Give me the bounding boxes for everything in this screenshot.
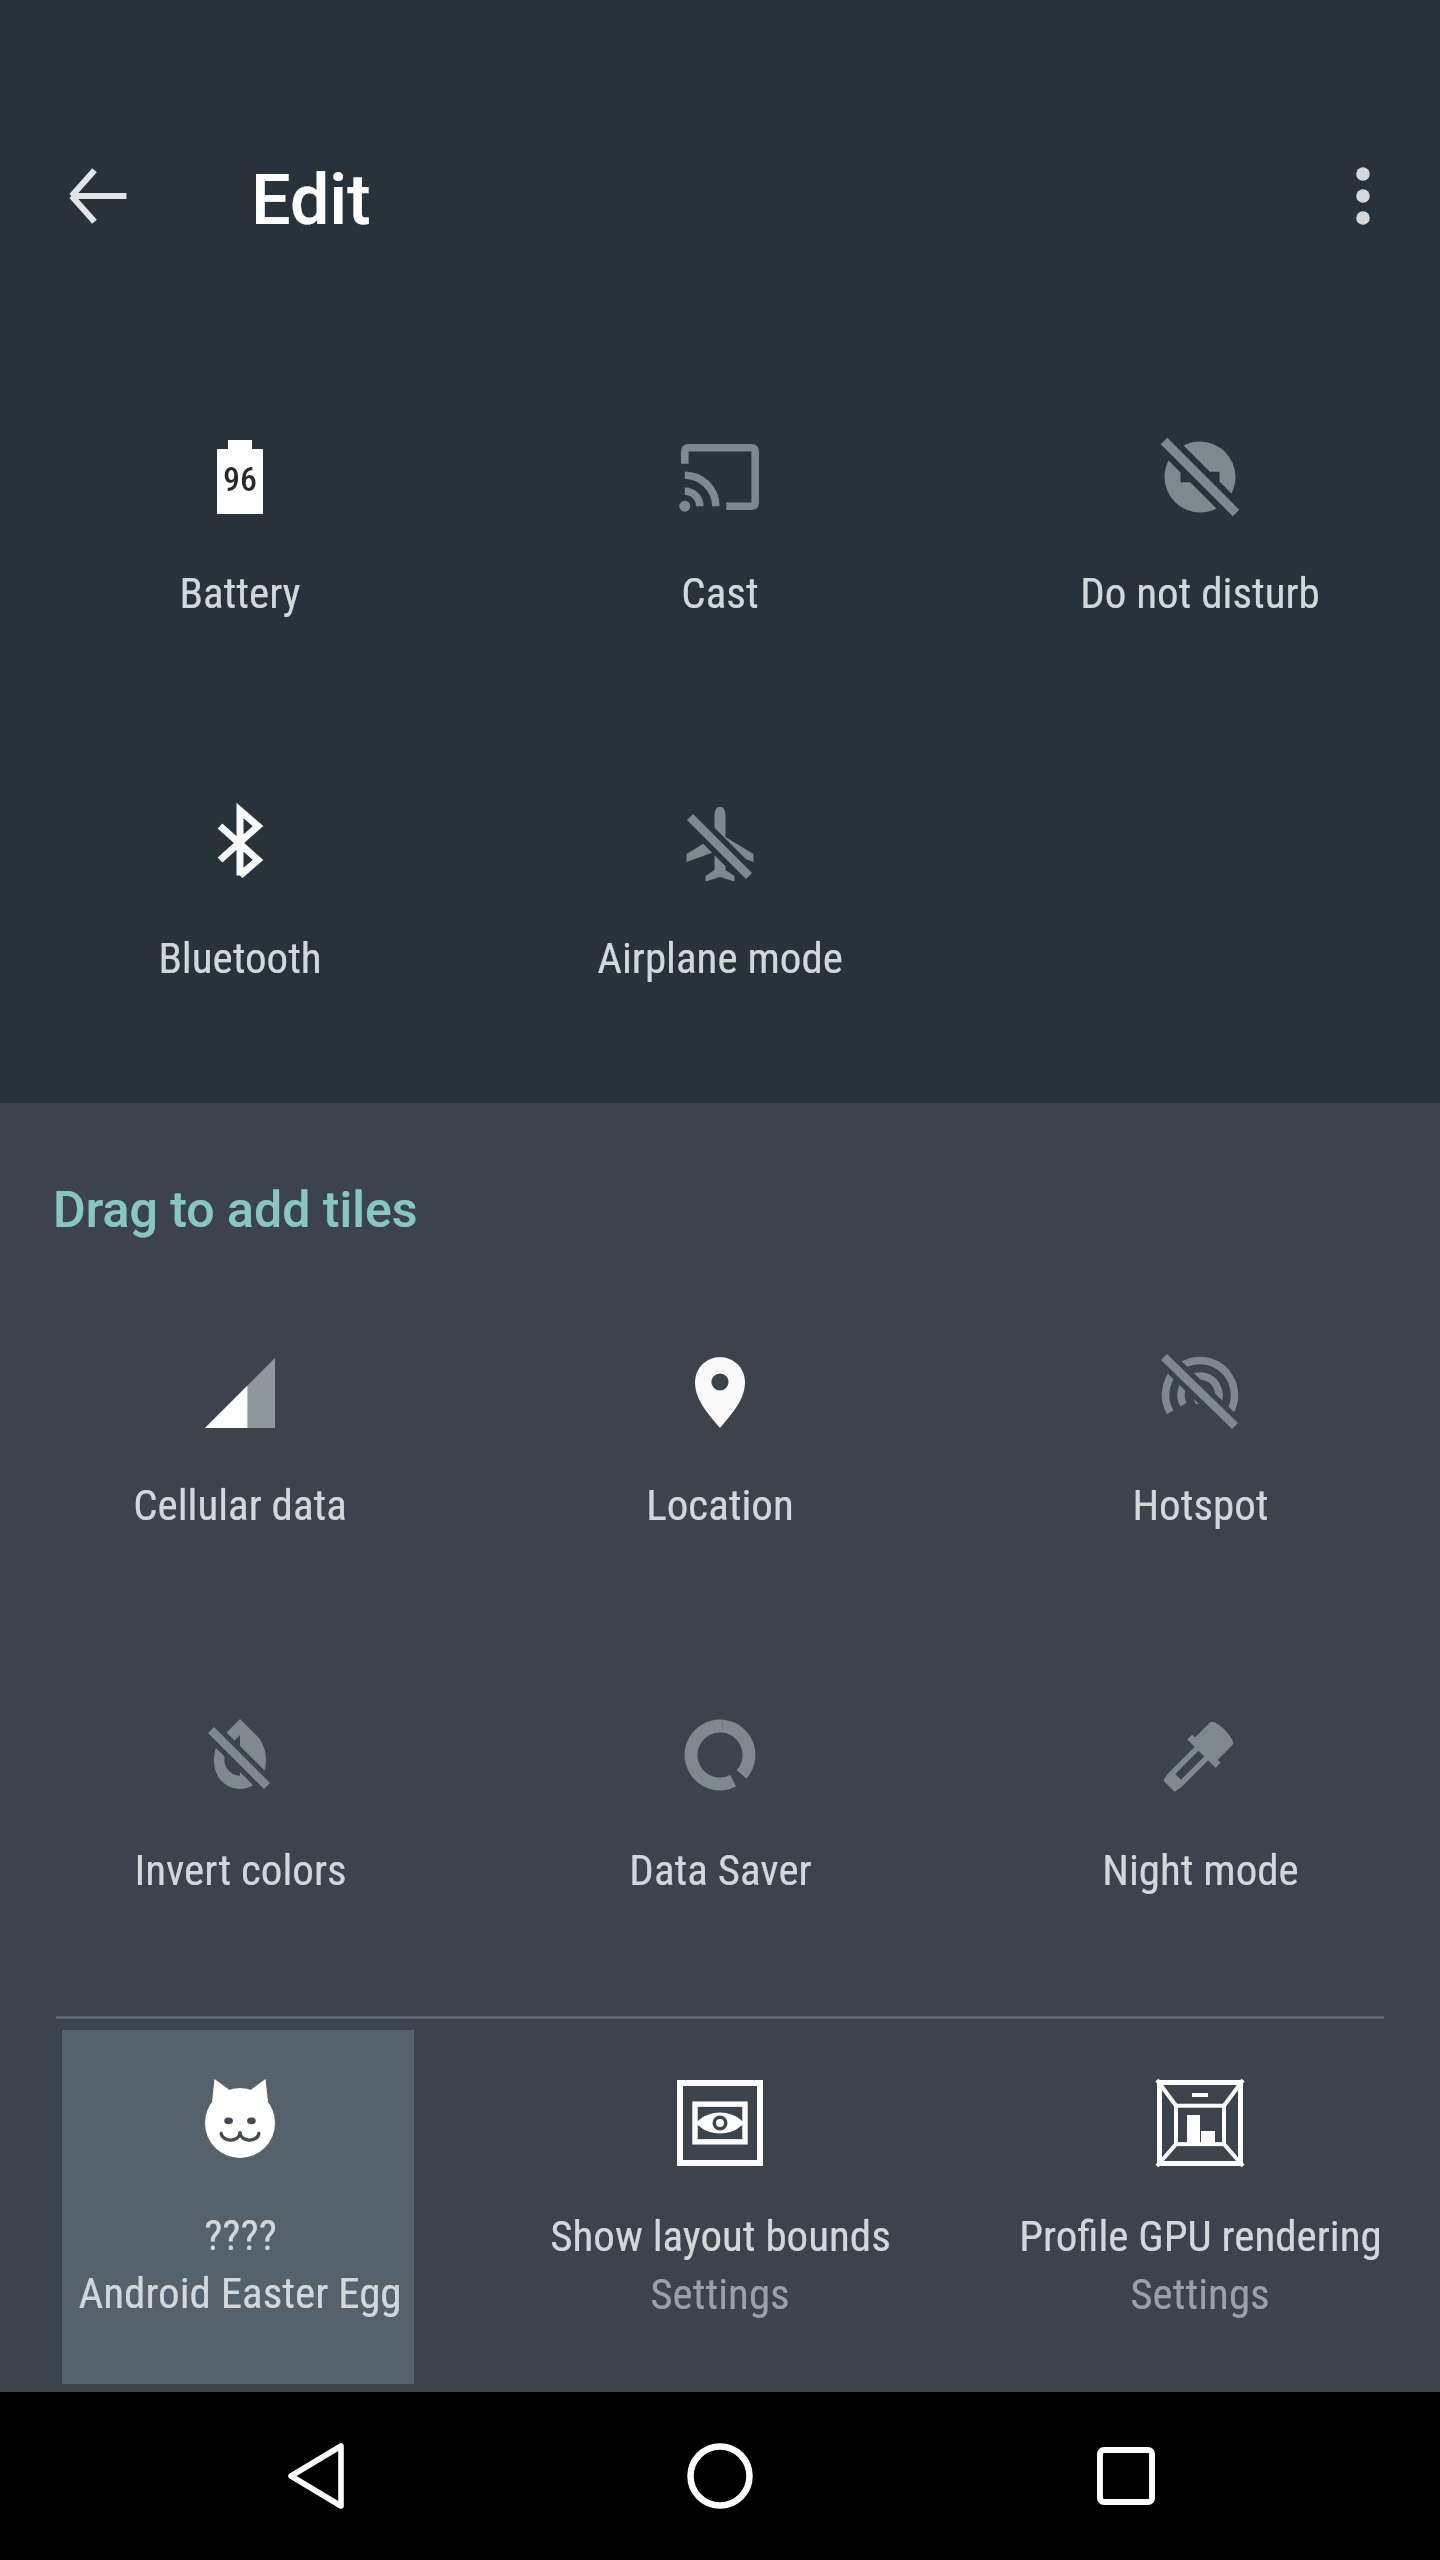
button[interactable]: Night mode (1020, 1685, 1380, 1901)
staticText: Edit (251, 159, 371, 241)
staticText: Android Easter Egg (78, 2268, 402, 2318)
button[interactable]: Invert colors (60, 1685, 420, 1901)
staticText: Hotspot (1132, 1480, 1269, 1530)
staticText: Cast (681, 568, 759, 618)
staticText: Cellular data (133, 1480, 347, 1530)
staticText: Invert colors (134, 1845, 347, 1895)
staticText: Bluetooth (158, 933, 322, 983)
staticText: Data Saver (629, 1845, 812, 1895)
staticText: Profile GPU rendering (1019, 2211, 1382, 2261)
button[interactable]: Show layout bounds (490, 2030, 950, 2384)
button[interactable]: Airplane mode (540, 773, 900, 989)
button[interactable]: Navigate up (38, 136, 158, 256)
staticText: Location (646, 1480, 794, 1530)
button[interactable]: Cast (540, 407, 900, 624)
button[interactable]: Back (236, 2396, 396, 2556)
staticText: Night mode (1102, 1845, 1299, 1895)
staticText: Airplane mode (597, 933, 843, 983)
staticText: Settings (650, 2269, 790, 2319)
button[interactable]: Bluetooth (60, 773, 420, 989)
staticText: 96 (223, 459, 257, 499)
button[interactable]: Data Saver (540, 1685, 900, 1901)
staticText: Settings (1130, 2269, 1270, 2319)
staticText: Show layout bounds (550, 2211, 891, 2261)
button[interactable]: Cellular data (60, 1323, 420, 1536)
button[interactable]: Profile GPU rendering (970, 2030, 1430, 2384)
button[interactable]: Location (540, 1323, 900, 1536)
button[interactable]: ???? (10, 2030, 470, 2384)
staticText: Drag to add tiles (53, 1181, 418, 1240)
staticText: ???? (204, 2210, 277, 2260)
button[interactable]: More options (1308, 141, 1418, 251)
button[interactable]: Battery (60, 407, 420, 624)
button[interactable]: Do not disturb (1020, 407, 1380, 624)
staticText: Do not disturb (1080, 568, 1320, 618)
button[interactable]: Hotspot (1020, 1323, 1380, 1536)
button[interactable]: Home (640, 2396, 800, 2556)
staticText: Battery (179, 568, 301, 618)
button[interactable]: Recent apps (1046, 2396, 1206, 2556)
